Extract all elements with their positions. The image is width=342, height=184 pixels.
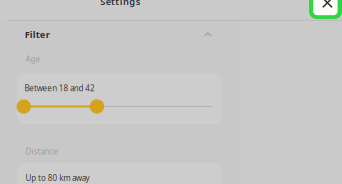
staticText: Filter <box>25 28 50 41</box>
button[interactable]: Up to 80 km away <box>17 163 222 184</box>
staticText: Up to 80 km away <box>25 173 90 183</box>
staticText: Distance <box>25 146 58 157</box>
button[interactable]: Between 18 and 42 <box>17 73 222 124</box>
staticText: Between 18 and 42 <box>24 83 95 93</box>
button[interactable]: Filter <box>25 27 212 41</box>
staticText: Age <box>26 54 41 64</box>
staticText: Settings <box>100 0 141 8</box>
button[interactable]: Close <box>309 0 342 19</box>
